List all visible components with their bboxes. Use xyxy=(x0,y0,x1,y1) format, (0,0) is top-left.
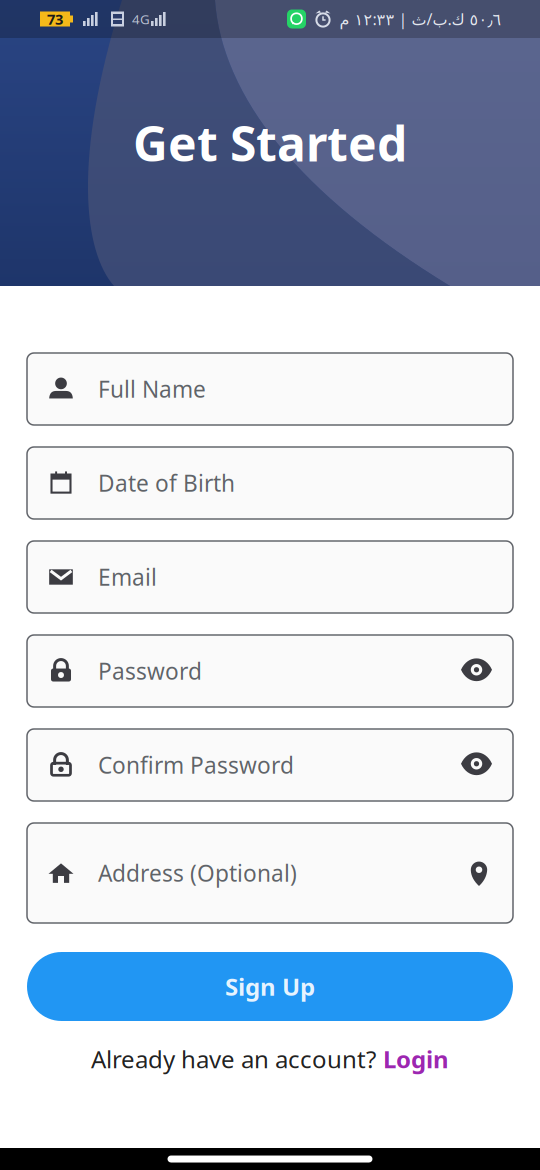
staticText: Email xyxy=(98,562,157,592)
button[interactable]: Email xyxy=(27,541,513,613)
staticText: Full Name xyxy=(98,374,206,404)
button[interactable]: Address (Optional) xyxy=(27,823,513,923)
staticText: ٥٠٫٦ ك.ب/ث | ١٢:٣٣ م xyxy=(339,8,501,30)
staticText: 73 xyxy=(47,9,63,29)
button[interactable]: Login xyxy=(383,1043,449,1075)
staticText: Get Started xyxy=(133,111,407,175)
staticText: Password xyxy=(98,656,202,686)
button[interactable]: Password xyxy=(27,635,513,707)
staticText: Sign Up xyxy=(225,971,315,1002)
staticText: Confirm Password xyxy=(98,750,294,780)
staticText: Already have an account? xyxy=(91,1043,376,1075)
staticText: Address (Optional) xyxy=(98,858,297,888)
staticText: Login xyxy=(383,1043,449,1075)
staticText: 4G xyxy=(132,10,150,28)
staticText: Date of Birth xyxy=(98,468,235,498)
button[interactable]: Date of Birth xyxy=(27,447,513,519)
button[interactable]: Full Name xyxy=(27,353,513,425)
button[interactable]: Confirm Password xyxy=(27,729,513,801)
button[interactable]: Sign Up xyxy=(27,952,513,1021)
